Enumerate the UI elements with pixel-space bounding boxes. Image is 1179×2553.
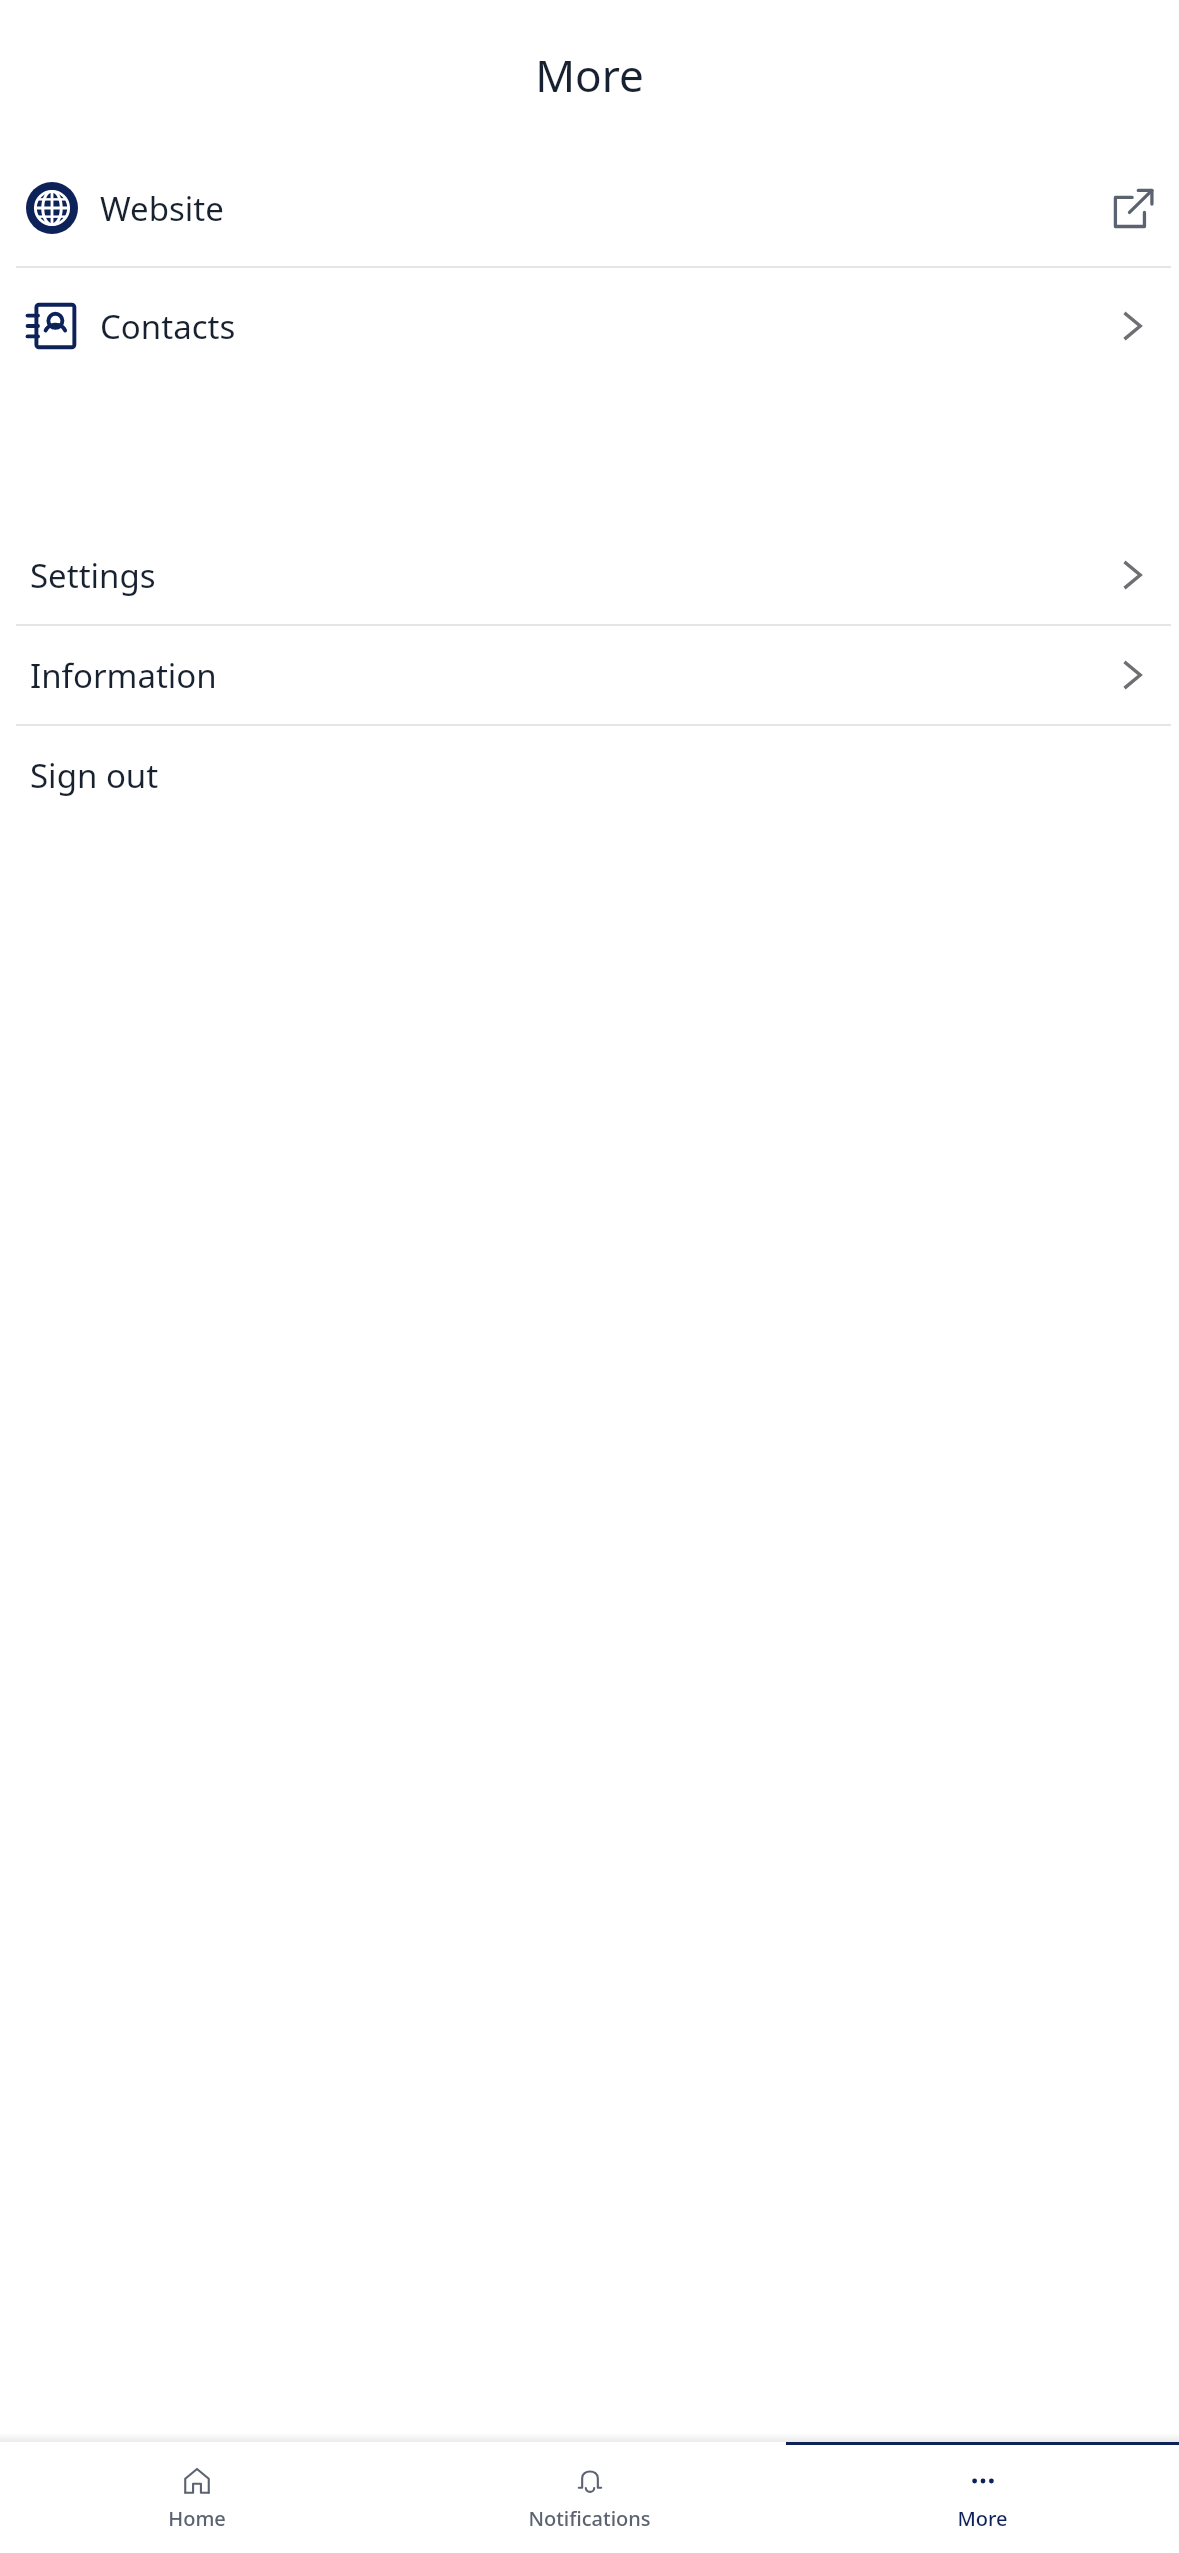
staticText: More [957,2505,1008,2532]
staticText: Home [168,2505,226,2532]
staticText: Sign out [30,753,159,798]
staticText: Information [30,653,217,698]
button[interactable]: Information [0,626,1179,724]
button[interactable]: Home [0,2445,393,2553]
other: Open website in browser [1111,186,1155,230]
button[interactable]: Settings [0,526,1179,624]
button[interactable]: Contacts [0,268,1179,384]
button[interactable]: Notifications [393,2445,786,2553]
staticText: More [535,45,644,105]
staticText: Notifications [528,2505,651,2532]
button[interactable]: More [786,2445,1179,2553]
button[interactable]: Sign out [0,726,1179,824]
staticText: Contacts [100,304,236,349]
staticText: Settings [30,553,156,598]
staticText: Website [100,186,224,231]
button[interactable]: Website [0,150,1179,266]
